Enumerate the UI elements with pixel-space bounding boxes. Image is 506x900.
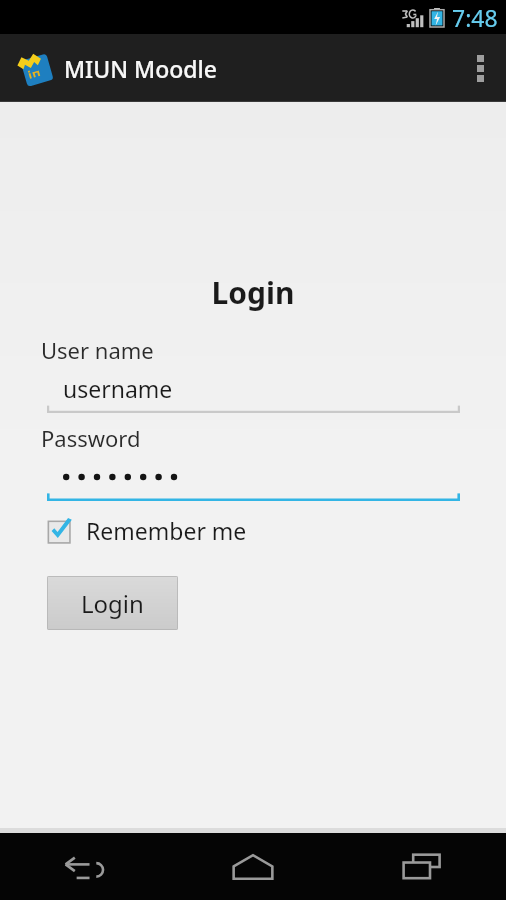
button[interactable]: Remember me xyxy=(47,511,255,550)
staticText: Remember me xyxy=(86,515,247,546)
button[interactable]: username xyxy=(47,373,460,413)
staticText: Login xyxy=(0,272,506,313)
button[interactable]: More options xyxy=(454,34,506,102)
button[interactable]: Recent apps xyxy=(337,833,506,900)
staticText: User name xyxy=(41,335,154,365)
button[interactable]: Back xyxy=(0,833,168,900)
staticText: Login xyxy=(81,587,144,620)
button[interactable]: Login xyxy=(47,576,178,630)
button[interactable]: Home xyxy=(168,833,337,900)
button[interactable] xyxy=(47,461,460,501)
staticText: username xyxy=(63,373,173,404)
staticText: 7:48 xyxy=(452,2,498,33)
staticText: Password xyxy=(41,423,141,453)
staticText: MIUN Moodle xyxy=(64,53,217,84)
